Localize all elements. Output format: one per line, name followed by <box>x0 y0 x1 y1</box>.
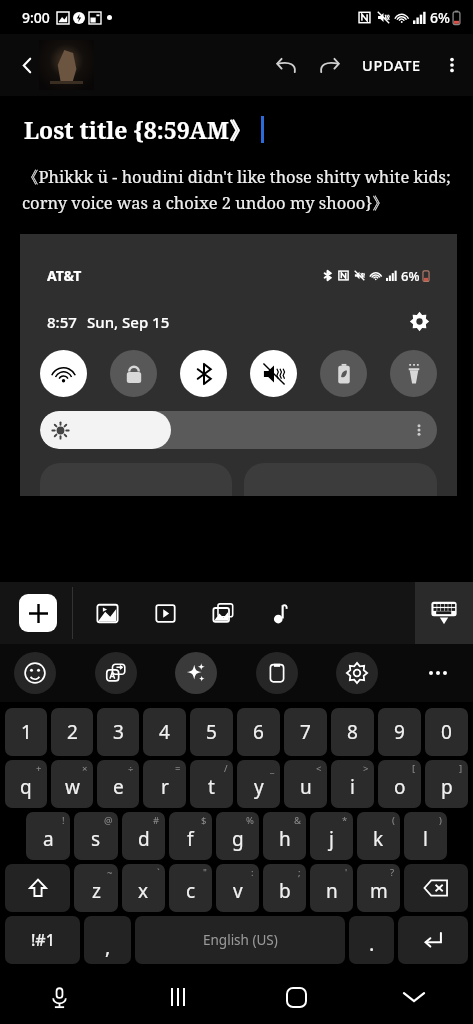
staticText: r <box>161 774 169 800</box>
staticText: / <box>224 762 228 775</box>
button[interactable]: Undo <box>264 43 308 87</box>
button[interactable]: Translate <box>95 652 137 694</box>
button[interactable]: $ <box>169 812 212 860</box>
button[interactable]: 7 <box>284 708 327 756</box>
button[interactable]: ~ <box>74 864 118 912</box>
button[interactable]: Clipboard <box>256 652 298 694</box>
button[interactable]: < <box>284 760 327 808</box>
button[interactable]: 1 <box>5 708 47 756</box>
staticText: 4 <box>159 719 170 745</box>
button[interactable]: Recents <box>119 970 237 1024</box>
staticText: j <box>329 826 334 852</box>
staticText: n <box>326 878 338 904</box>
button[interactable] <box>250 350 297 397</box>
staticText: a <box>43 826 54 852</box>
button[interactable]: . <box>349 916 394 964</box>
button[interactable]: 5 <box>190 708 233 756</box>
button[interactable]: Emoji <box>14 652 56 694</box>
button[interactable]: AT&T <box>20 234 457 496</box>
button[interactable]: _ <box>237 760 280 808</box>
button[interactable]: ` <box>122 864 165 912</box>
button[interactable]: 6 <box>237 708 280 756</box>
button[interactable]: Close keyboard <box>355 970 473 1024</box>
button[interactable]: ( <box>357 812 400 860</box>
button[interactable]: * <box>310 812 353 860</box>
button[interactable]: Image <box>88 594 126 632</box>
button[interactable]: Add attachment <box>19 594 57 632</box>
button[interactable]: ? <box>357 864 400 912</box>
button[interactable]: ; <box>263 864 306 912</box>
button[interactable]: ! <box>26 812 70 860</box>
button[interactable]: × <box>51 760 93 808</box>
button[interactable]: ' <box>310 864 353 912</box>
button[interactable]: " <box>169 864 212 912</box>
staticText: g <box>232 826 244 852</box>
button[interactable]: ) <box>404 812 447 860</box>
staticText: !#1 <box>31 929 55 951</box>
button[interactable]: Redo <box>308 43 352 87</box>
button[interactable]: !#1 <box>5 916 80 964</box>
button[interactable]: , <box>84 916 131 964</box>
button[interactable]: = <box>143 760 186 808</box>
button[interactable]: ÷ <box>97 760 139 808</box>
button[interactable]: Voice input <box>0 970 119 1024</box>
button[interactable]: UPDATE <box>352 47 431 83</box>
button[interactable]: 4 <box>143 708 186 756</box>
staticText: 3 <box>113 719 124 745</box>
button[interactable]: Effects <box>175 652 217 694</box>
button[interactable]: [ <box>378 760 421 808</box>
button[interactable]: 2 <box>51 708 93 756</box>
button[interactable]: Settings <box>336 652 378 694</box>
button[interactable]: Shift <box>5 864 70 912</box>
button[interactable]: Audio <box>262 594 300 632</box>
staticText: @ <box>104 814 113 827</box>
staticText: 6% <box>401 267 420 285</box>
staticText: Sun, Sep 15 <box>87 312 170 332</box>
button[interactable] <box>110 350 157 397</box>
button[interactable]: # <box>122 812 165 860</box>
staticText: % <box>246 814 254 827</box>
staticText: b <box>279 878 291 904</box>
button[interactable]: : <box>216 864 259 912</box>
button[interactable]: Video <box>146 594 184 632</box>
staticText: o <box>394 774 406 800</box>
button[interactable]: Backspace <box>404 864 468 912</box>
button[interactable]: ] <box>425 760 468 808</box>
button[interactable]: 0 <box>425 708 468 756</box>
button[interactable]: Hide keyboard <box>415 582 473 644</box>
button[interactable]: English (US) <box>135 916 345 964</box>
button[interactable] <box>320 350 367 397</box>
staticText: : <box>251 866 254 879</box>
staticText: English (US) <box>203 931 278 949</box>
staticText: $ <box>201 814 207 827</box>
button[interactable]: Home <box>237 970 355 1024</box>
staticText: ; <box>298 866 301 879</box>
button[interactable]: Gallery <box>204 594 242 632</box>
button[interactable]: More <box>417 652 459 694</box>
button[interactable]: + <box>5 760 47 808</box>
button[interactable]: Back <box>8 46 46 84</box>
staticText: ! <box>62 814 65 827</box>
button[interactable]: 3 <box>97 708 139 756</box>
staticText: k <box>373 826 384 852</box>
button[interactable]: & <box>263 812 306 860</box>
button[interactable] <box>390 350 437 397</box>
button[interactable]: @ <box>74 812 118 860</box>
button[interactable] <box>40 350 87 397</box>
staticText: " <box>203 866 207 879</box>
button[interactable]: Enter <box>398 916 468 964</box>
button[interactable]: / <box>190 760 233 808</box>
staticText: 8 <box>347 719 358 745</box>
button[interactable] <box>180 350 227 397</box>
button[interactable]: > <box>331 760 374 808</box>
button[interactable] <box>39 40 94 90</box>
staticText: UPDATE <box>362 55 421 75</box>
staticText: ? <box>390 866 395 879</box>
staticText: ( <box>392 814 395 827</box>
staticText: > <box>363 762 369 775</box>
button[interactable]: 8 <box>331 708 374 756</box>
staticText: , <box>105 933 111 960</box>
button[interactable]: 9 <box>378 708 421 756</box>
button[interactable]: More options <box>431 44 473 86</box>
button[interactable]: % <box>216 812 259 860</box>
